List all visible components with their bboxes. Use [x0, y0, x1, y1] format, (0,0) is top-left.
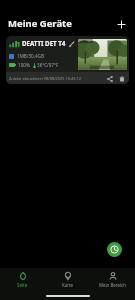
staticText: Meine Geräte — [8, 17, 72, 30]
button[interactable]: Teilen — [105, 74, 114, 83]
staticText: 1MB/30,4GB — [17, 53, 44, 59]
staticText: DEATTI DET T4 — [22, 39, 66, 47]
button[interactable]: Karte — [45, 268, 90, 292]
staticText: Seite — [17, 282, 28, 288]
button[interactable]: Mein Bereich — [90, 268, 135, 292]
button[interactable]: Umbenennen — [67, 39, 76, 48]
staticText: Karte — [62, 282, 74, 288]
staticText: 36°C/97°F — [37, 62, 59, 68]
staticText: 100% — [18, 62, 30, 68]
button[interactable]: Live-Vorschau — [78, 39, 127, 70]
staticText: Mein Bereich — [99, 282, 126, 288]
button[interactable]: Hinzufügen — [107, 242, 122, 257]
button[interactable]: DEATTI DET T4 — [6, 36, 129, 84]
button[interactable]: Löschen — [117, 74, 126, 83]
button[interactable]: Gerät hinzufügen — [112, 15, 130, 33]
button[interactable]: Seite — [0, 268, 45, 292]
staticText: Zuletzt aktualisiert 08/08/2025 10:45:12 — [9, 76, 81, 81]
